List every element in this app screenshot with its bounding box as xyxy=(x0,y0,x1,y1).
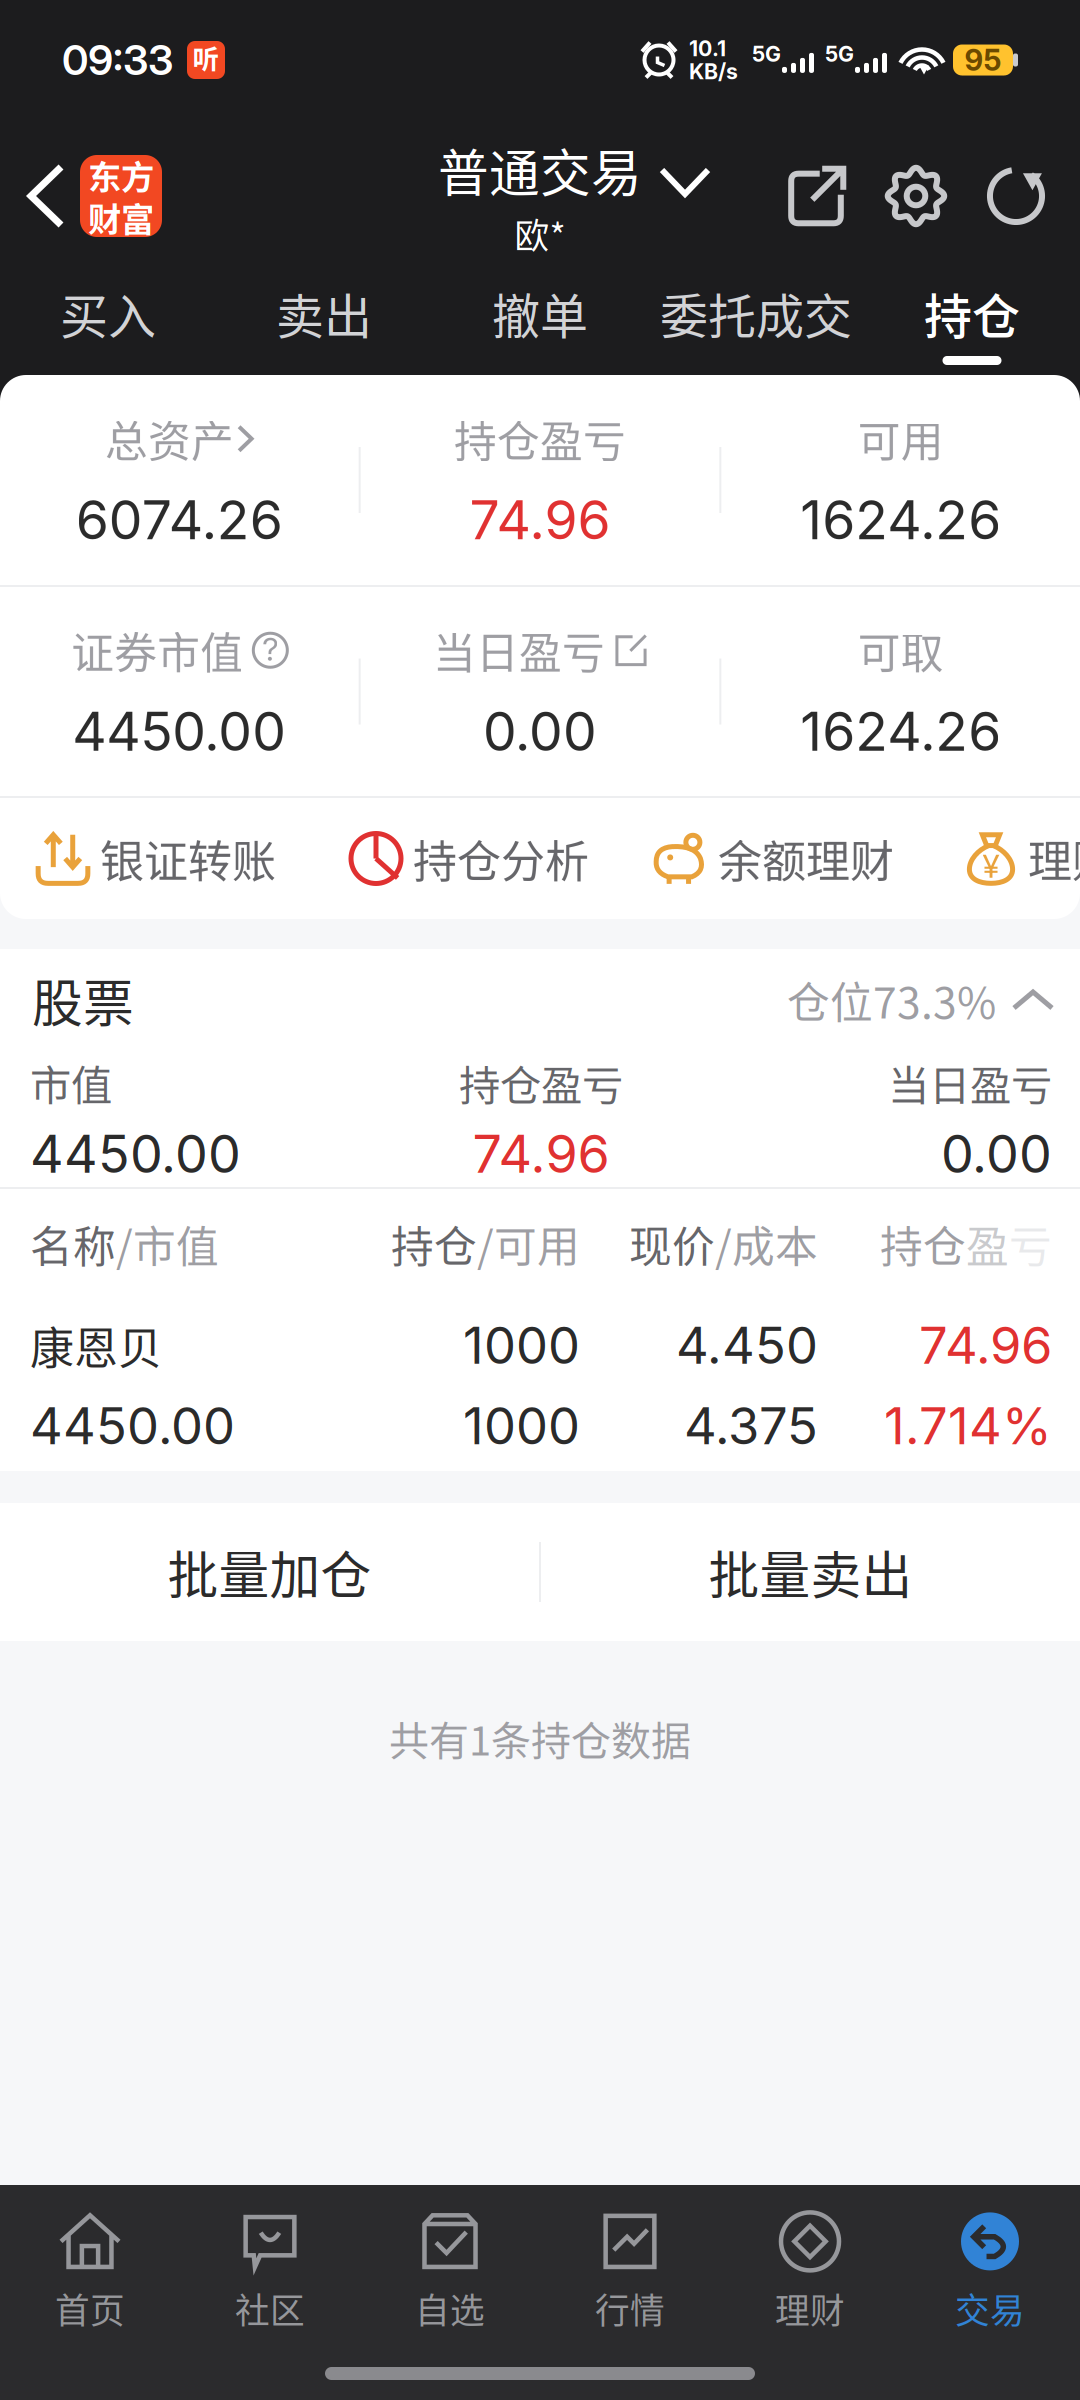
staticText: 自选 xyxy=(415,2283,485,2334)
staticText: 持仓盈亏 xyxy=(459,1053,623,1112)
staticText: 当日盈亏 xyxy=(888,1053,1052,1112)
staticText: 批量卖出 xyxy=(708,1535,912,1609)
staticText: 1000 xyxy=(463,1315,580,1376)
staticText: 撤单 xyxy=(492,278,588,348)
button[interactable]: 委托成交 xyxy=(660,276,852,371)
staticText: 95 xyxy=(964,42,1001,78)
staticText: 证券市值 xyxy=(71,619,243,681)
staticText: 持仓 xyxy=(924,278,1020,348)
staticText: 10.1 xyxy=(689,36,726,61)
staticText: 财富 xyxy=(88,193,154,241)
button[interactable]: 返回 xyxy=(12,141,80,251)
staticText: 卖出 xyxy=(276,278,372,348)
staticText: 可取 xyxy=(858,619,944,681)
staticText: 5G xyxy=(752,41,781,67)
button[interactable]: 卖出 xyxy=(276,276,372,371)
staticText: 批量加仓 xyxy=(167,1535,371,1609)
staticText: 4.450 xyxy=(676,1315,818,1376)
staticText: 6074.26 xyxy=(76,488,283,552)
staticText: 1624.26 xyxy=(800,699,1001,764)
staticText: 4450.00 xyxy=(30,1395,235,1456)
staticText: 康恩贝 xyxy=(30,1313,162,1377)
button[interactable]: 持仓 xyxy=(924,276,1020,371)
staticText: 欧* xyxy=(514,209,565,259)
button[interactable]: 批量卖出 xyxy=(541,1503,1080,1641)
staticText: 1000 xyxy=(463,1395,580,1456)
staticText: 74.96 xyxy=(919,1315,1052,1376)
staticText: 盈 xyxy=(966,1213,1009,1275)
button[interactable]: 首页 xyxy=(0,2208,180,2338)
staticText: 仓位73.3% xyxy=(787,969,996,1031)
staticText: 74.96 xyxy=(472,1122,609,1185)
staticText: 4.375 xyxy=(684,1395,818,1456)
button[interactable]: 买入 xyxy=(60,276,156,371)
button[interactable]: 理财 xyxy=(720,2208,900,2338)
button[interactable]: 康恩贝 xyxy=(0,1299,1080,1471)
button[interactable]: 批量加仓 xyxy=(0,1503,539,1641)
staticText: /成本 xyxy=(715,1213,818,1275)
button[interactable]: 设置 xyxy=(878,146,954,246)
staticText: 名称 xyxy=(30,1213,116,1275)
staticText: 持仓 xyxy=(391,1213,477,1275)
staticText: 持仓分析 xyxy=(413,827,589,890)
button[interactable]: 自选 xyxy=(360,2208,540,2338)
staticText: 交易 xyxy=(955,2283,1025,2334)
staticText: 买入 xyxy=(60,278,156,348)
staticText: 首页 xyxy=(55,2283,125,2334)
staticText: /市值 xyxy=(116,1213,219,1275)
staticText: 社区 xyxy=(235,2283,305,2334)
staticText: 0.00 xyxy=(941,1122,1052,1185)
staticText: 理财 xyxy=(1028,827,1080,890)
button[interactable]: 行情 xyxy=(540,2208,720,2338)
staticText: 4450.00 xyxy=(30,1122,241,1185)
staticText: 74.96 xyxy=(469,488,610,552)
staticText: 仓 xyxy=(923,1213,966,1275)
button[interactable]: 交易 xyxy=(900,2208,1080,2338)
staticText: 0.00 xyxy=(483,699,597,764)
staticText: 亏 xyxy=(1009,1213,1052,1275)
staticText: 总资产 xyxy=(105,408,234,470)
staticText: ? xyxy=(262,630,278,668)
staticText: 听 xyxy=(192,38,219,76)
staticText: 银证转账 xyxy=(100,827,276,890)
button[interactable]: 余额理财 xyxy=(654,827,894,890)
button[interactable]: 分享 xyxy=(778,146,854,246)
staticText: 1624.26 xyxy=(800,488,1001,552)
staticText: 5G xyxy=(825,41,854,67)
staticText: 股票 xyxy=(32,963,134,1037)
staticText: 4450.00 xyxy=(72,699,286,764)
staticText: 可用 xyxy=(858,408,944,470)
staticText: 普通交易 xyxy=(438,133,642,207)
button[interactable]: 银证转账 xyxy=(36,827,276,890)
staticText: ¥ xyxy=(982,847,999,885)
staticText: 委托成交 xyxy=(660,278,852,348)
staticText: 东方 xyxy=(88,151,154,199)
staticText: 1.714% xyxy=(884,1395,1052,1456)
staticText: 共有1条持仓数据 xyxy=(389,1709,691,1767)
staticText: 持 xyxy=(880,1213,923,1275)
staticText: 现价 xyxy=(629,1213,715,1275)
button[interactable]: 普通交易 xyxy=(330,131,750,261)
button[interactable]: 刷新 xyxy=(978,146,1054,246)
staticText: 市值 xyxy=(30,1053,112,1112)
button[interactable]: 持仓分析 xyxy=(349,827,589,890)
staticText: KB/s xyxy=(689,58,738,84)
button[interactable]: 社区 xyxy=(180,2208,360,2338)
staticText: /可用 xyxy=(477,1213,580,1275)
staticText: 持仓盈亏 xyxy=(454,408,626,470)
staticText: 09:33 xyxy=(62,35,173,85)
staticText: 余额理财 xyxy=(718,827,894,890)
button[interactable]: ¥ xyxy=(964,827,1080,890)
button[interactable]: 撤单 xyxy=(492,276,588,371)
button[interactable]: 仓位73.3% xyxy=(787,969,1052,1031)
staticText: 理财 xyxy=(775,2283,845,2334)
staticText: 行情 xyxy=(595,2283,665,2334)
staticText: 当日盈亏 xyxy=(433,619,605,681)
